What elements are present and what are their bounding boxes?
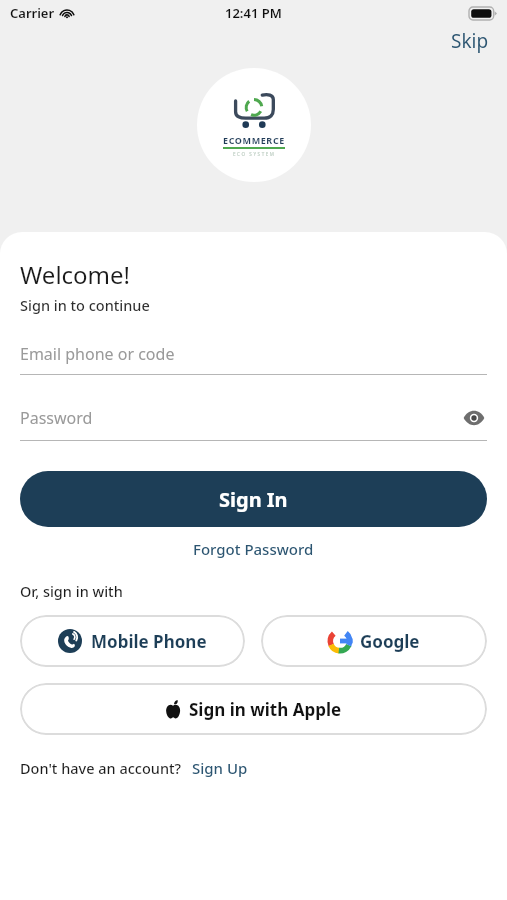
button[interactable]: Forgot Password	[183, 535, 324, 563]
staticText: Carrier	[10, 4, 55, 22]
staticText: ECOMMERCE	[223, 134, 285, 146]
staticText: Sign in with Apple	[189, 698, 342, 721]
button[interactable]: Google	[261, 615, 487, 667]
button[interactable]: Password	[20, 405, 487, 441]
staticText: Forgot Password	[193, 539, 314, 559]
button[interactable]: Skip	[433, 26, 507, 56]
staticText: Password	[20, 407, 461, 429]
button[interactable]: Sign Up	[182, 755, 258, 781]
staticText: Google	[360, 630, 420, 653]
button[interactable]: Mobile Phone	[20, 615, 245, 667]
staticText: Skip	[451, 28, 489, 54]
button[interactable]: Show password	[461, 405, 487, 431]
staticText: ECO SYSTEM	[233, 151, 276, 157]
staticText: Sign In	[219, 486, 288, 513]
staticText: 12:41 PM	[225, 4, 282, 22]
staticText: Or, sign in with	[20, 581, 123, 601]
staticText: Sign in to continue	[20, 295, 150, 315]
staticText: Don't have an account?	[20, 758, 182, 778]
button[interactable]: Email phone or code	[20, 343, 487, 375]
button[interactable]: Sign in with Apple	[20, 683, 487, 735]
button[interactable]: Sign In	[20, 471, 487, 527]
staticText: Mobile Phone	[91, 630, 207, 653]
staticText: Sign Up	[192, 758, 248, 778]
staticText: Email phone or code	[20, 343, 487, 365]
staticText: Welcome!	[20, 258, 131, 291]
